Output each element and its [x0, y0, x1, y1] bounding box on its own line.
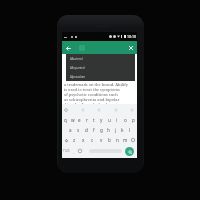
button[interactable]: Tool: [114, 108, 118, 112]
staticText: t: [93, 117, 95, 123]
staticText: e: [78, 117, 81, 123]
staticText: c: [91, 137, 94, 143]
staticText: b: [108, 137, 111, 143]
button[interactable]: Emoji: [76, 145, 83, 157]
staticText: i: [116, 117, 118, 123]
staticText: h: [107, 127, 110, 133]
staticText: w: [71, 117, 75, 123]
button[interactable]: Google: [64, 108, 68, 112]
button[interactable]: a: [66, 125, 74, 135]
button[interactable]: Back: [63, 43, 73, 53]
staticText: ,: [73, 149, 74, 154]
staticText: f: [93, 127, 95, 133]
button[interactable]: x: [79, 135, 88, 145]
button[interactable]: c: [88, 135, 97, 145]
staticText: j: [115, 127, 117, 133]
staticText: r: [86, 117, 88, 123]
staticText: Alprazolam: [70, 75, 86, 79]
button[interactable]: z: [70, 135, 79, 145]
button[interactable]: h: [105, 125, 112, 135]
staticText: y: [100, 117, 103, 123]
staticText: d: [85, 127, 88, 133]
staticText: l: [129, 127, 131, 133]
button[interactable]: Allopurinol: [66, 63, 135, 72]
button[interactable]: g: [98, 125, 105, 135]
staticText: of psychotic conditions such: [64, 92, 118, 97]
staticText: n: [116, 137, 119, 143]
button[interactable]: Shift: [62, 135, 70, 145]
staticText: k: [121, 127, 124, 133]
button[interactable]: Albuterol: [66, 54, 135, 63]
staticText: as schizophrenia and bipolar: [64, 97, 120, 102]
button[interactable]: w: [69, 115, 76, 125]
button[interactable]: e: [76, 115, 83, 125]
button[interactable]: d: [82, 125, 90, 135]
button[interactable]: q: [62, 115, 69, 125]
staticText: m: [123, 137, 128, 143]
button[interactable]: p: [129, 115, 137, 125]
staticText: Allopurinol: [70, 66, 85, 70]
button[interactable]: m: [121, 135, 129, 145]
button[interactable]: Alprazolam: [66, 72, 135, 81]
button[interactable]: Tool: [97, 108, 101, 112]
staticText: 10:10: [127, 34, 136, 39]
button[interactable]: l: [126, 125, 133, 135]
staticText: Albuterol: [70, 57, 83, 61]
button[interactable]: u: [105, 115, 113, 125]
staticText: q: [64, 117, 67, 123]
staticText: a trademark on the brand. Abilify: [64, 82, 129, 87]
button[interactable]: Close: [126, 43, 136, 53]
staticText: v: [100, 137, 103, 143]
button[interactable]: j: [112, 125, 119, 135]
staticText: a: [69, 127, 72, 133]
staticText: p: [132, 117, 135, 123]
button[interactable]: v: [97, 135, 105, 145]
button[interactable]: ,: [71, 145, 76, 157]
button[interactable]: t: [90, 115, 97, 125]
button[interactable]: n: [113, 135, 121, 145]
button[interactable]: s: [74, 125, 82, 135]
button[interactable]: Backspace: [129, 135, 137, 145]
button[interactable]: Tool: [81, 108, 85, 112]
staticText: z: [73, 137, 76, 143]
button[interactable]: r: [83, 115, 90, 125]
button[interactable]: y: [97, 115, 105, 125]
staticText: is used to treat the symptoms: [64, 87, 120, 92]
button[interactable]: i: [113, 115, 121, 125]
button[interactable]: Tool: [130, 108, 134, 112]
button[interactable]: f: [90, 125, 98, 135]
staticText: disorder. It works by changing: [64, 102, 122, 107]
staticText: s: [77, 127, 80, 133]
staticText: x: [82, 137, 85, 143]
button[interactable]: b: [105, 135, 113, 145]
staticText: g: [100, 127, 103, 133]
button[interactable]: o: [121, 115, 129, 125]
button[interactable]: k: [119, 125, 126, 135]
button[interactable]: ?123: [62, 145, 71, 157]
button[interactable]: Search: [125, 147, 134, 156]
staticText: ?123: [63, 149, 70, 153]
staticText: u: [108, 117, 111, 123]
staticText: o: [124, 117, 127, 123]
